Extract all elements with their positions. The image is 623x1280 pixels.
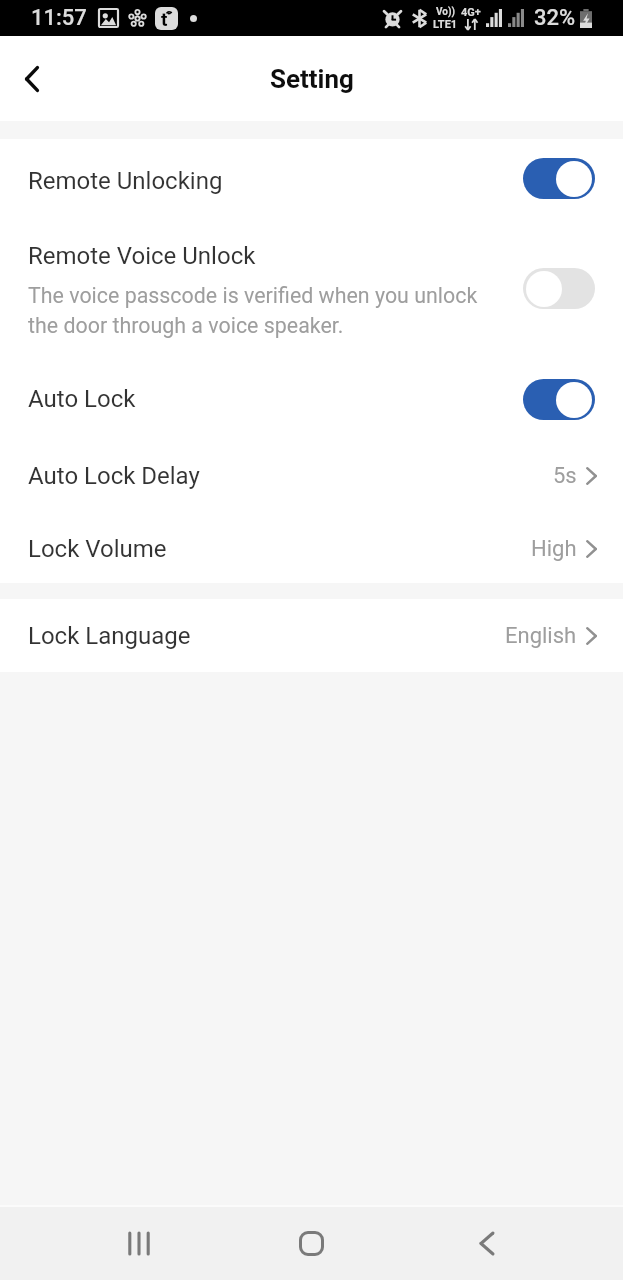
staticText: 11:57 xyxy=(31,5,87,31)
staticText: Remote Voice Unlock xyxy=(28,242,256,270)
staticText: Setting xyxy=(270,64,354,94)
staticText: t xyxy=(161,8,168,30)
staticText: 32% xyxy=(534,5,576,31)
staticText: Vo)) xyxy=(436,6,456,18)
staticText: Auto Lock xyxy=(28,385,136,413)
button[interactable]: Home xyxy=(225,1207,398,1280)
button[interactable]: Navigate back xyxy=(0,48,62,110)
button[interactable]: Lock Language xyxy=(0,599,623,672)
staticText: The voice passcode is verified when you … xyxy=(28,283,478,338)
button[interactable]: Remote Unlocking on xyxy=(523,158,595,199)
button[interactable]: Auto Lock xyxy=(0,362,623,436)
staticText: Remote Unlocking xyxy=(28,167,223,195)
button[interactable]: Back xyxy=(398,1207,571,1280)
staticText: English xyxy=(505,623,577,649)
staticText: LTE1 xyxy=(433,18,458,31)
staticText: 5s xyxy=(553,463,577,489)
button[interactable]: Remote Voice Unlock xyxy=(0,217,623,362)
button[interactable]: Auto Lock Delay xyxy=(0,436,623,510)
staticText: Auto Lock Delay xyxy=(28,462,200,490)
staticText: Lock Volume xyxy=(28,535,167,563)
staticText: 4G+ xyxy=(461,6,481,19)
button[interactable]: Auto Lock on xyxy=(523,379,595,420)
staticText: High xyxy=(531,536,577,562)
button[interactable]: Recent apps xyxy=(52,1207,225,1280)
button[interactable]: Lock Volume xyxy=(0,510,623,583)
button[interactable]: Remote Voice Unlock off xyxy=(523,268,595,309)
staticText: Lock Language xyxy=(28,622,191,650)
button[interactable]: Remote Unlocking xyxy=(0,139,623,217)
